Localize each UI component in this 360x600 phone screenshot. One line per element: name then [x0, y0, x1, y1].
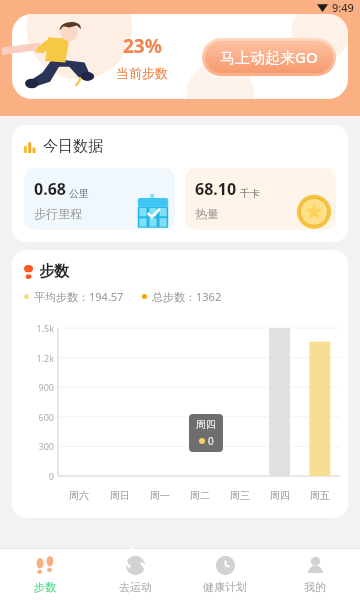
staticText: 公里	[69, 187, 89, 200]
staticText: 热量	[195, 206, 219, 221]
staticText: 周二	[190, 489, 210, 502]
button[interactable]: 我的	[270, 549, 360, 600]
staticText: 23%	[123, 33, 162, 59]
staticText: 步数	[39, 262, 69, 281]
staticText: 周四	[270, 489, 290, 502]
staticText: 0	[208, 434, 214, 448]
button[interactable]: 0.68	[24, 168, 175, 230]
staticText: 平均步数：194.57	[34, 289, 124, 304]
staticText: 68.10	[195, 178, 237, 200]
staticText: 周三	[230, 489, 250, 502]
staticText: 步数	[34, 580, 56, 594]
staticText: 千卡	[240, 187, 260, 200]
staticText: 周六	[69, 489, 89, 502]
staticText: 0.68	[34, 178, 66, 200]
staticText: 600	[38, 411, 54, 423]
staticText: 总步数：1362	[152, 289, 222, 304]
button[interactable]: 去运动	[90, 549, 180, 600]
staticText: 马上动起来GO	[220, 47, 318, 67]
staticText: 1.2k	[36, 352, 54, 364]
staticText: 今日数据	[43, 137, 103, 156]
button[interactable]: 健康计划	[180, 549, 270, 600]
staticText: 去运动	[119, 580, 152, 594]
staticText: 健康计划	[203, 580, 247, 594]
staticText: 步行里程	[34, 206, 82, 221]
staticText: 我的	[304, 580, 326, 594]
staticText: 周一	[150, 489, 170, 502]
staticText: 当前步数	[116, 65, 168, 81]
staticText: 1.5k	[36, 322, 54, 334]
staticText: 周四	[196, 418, 216, 431]
staticText: 周日	[110, 489, 130, 502]
staticText: 0	[48, 470, 54, 482]
staticText: 300	[38, 440, 54, 452]
staticText: 周五	[310, 489, 330, 502]
button[interactable]: 68.10	[185, 168, 336, 230]
staticText: 900	[38, 381, 54, 393]
button[interactable]: 马上动起来GO	[202, 38, 336, 76]
button[interactable]: 步数	[0, 549, 90, 600]
staticText: 9:49	[332, 0, 354, 14]
